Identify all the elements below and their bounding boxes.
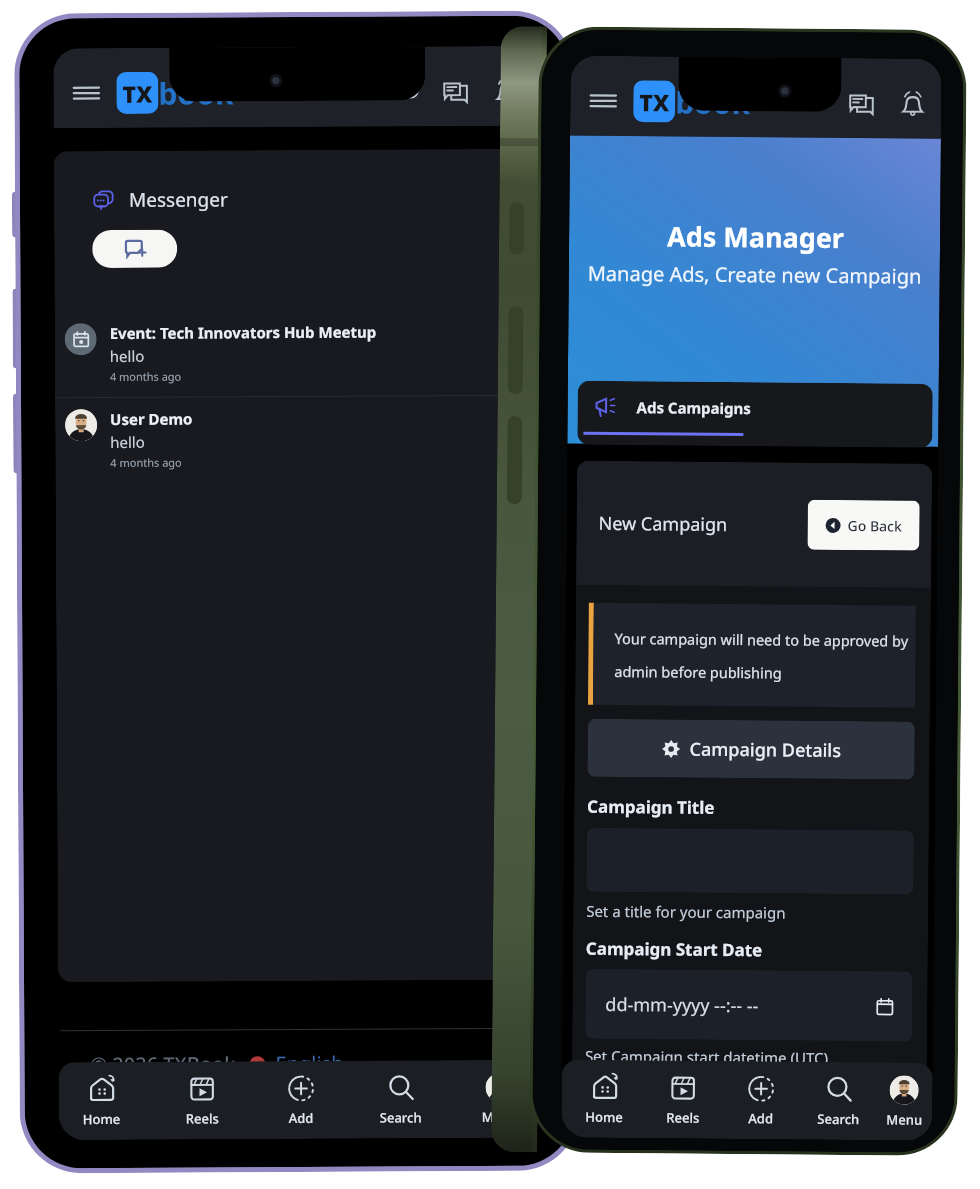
button[interactable]: New message (92, 230, 177, 268)
staticText: book (158, 72, 234, 114)
staticText: Go Back (847, 516, 903, 535)
button[interactable]: Go Back (807, 500, 920, 551)
button[interactable]: Campaign Details (587, 719, 915, 780)
button[interactable]: Menu (588, 86, 618, 116)
button[interactable]: Add (721, 1070, 800, 1132)
button[interactable]: Add friend (795, 88, 825, 118)
staticText: Reels (186, 1109, 219, 1128)
staticText: hello (110, 346, 145, 366)
staticText: Search (380, 1108, 422, 1127)
staticText: TX (639, 86, 670, 117)
button[interactable]: Event: Tech Innovators Hub Meetup (54, 310, 537, 397)
button[interactable] (586, 828, 914, 895)
staticText: Event: Tech Innovators Hub Meetup (110, 322, 377, 343)
button[interactable]: Add friend (389, 76, 419, 107)
button[interactable]: Reels (162, 1070, 241, 1132)
staticText: book (675, 81, 751, 123)
staticText: Ads Campaigns (636, 397, 752, 418)
button[interactable]: Search (361, 1069, 440, 1131)
button[interactable]: Notifications (898, 89, 927, 119)
staticText: User Demo (110, 408, 193, 429)
button[interactable]: Home (62, 1071, 141, 1132)
staticText: Campaign Details (689, 737, 842, 763)
button[interactable]: Menu (460, 1069, 539, 1130)
staticText: Add (748, 1109, 773, 1127)
staticText: Your campaign will need to be approved b… (614, 628, 909, 684)
button[interactable]: TX (116, 71, 234, 114)
button[interactable]: Search (799, 1071, 878, 1132)
staticText: Home (585, 1108, 623, 1126)
staticText: Campaign Start Date (586, 937, 763, 961)
staticText: TX (122, 78, 153, 109)
staticText: New Campaign (598, 511, 728, 537)
button[interactable]: Menu (71, 78, 101, 108)
staticText: Ads Manager (667, 217, 844, 256)
staticText: Manage Ads, Create new Campaign (588, 260, 922, 290)
staticText: Campaign Title (587, 795, 715, 819)
staticText: Home (83, 1110, 121, 1128)
staticText: Set Campaign start datetime (UTC) (585, 1046, 829, 1068)
staticText: Set a title for your campaign (586, 901, 786, 922)
button[interactable]: dd-mm-yyyy --:-- -- (585, 969, 913, 1042)
button[interactable]: Ads Campaigns (577, 381, 933, 435)
staticText: English (275, 1050, 344, 1077)
staticText: Reels (666, 1108, 699, 1127)
button[interactable]: Menu (877, 1071, 931, 1133)
button[interactable]: Add (261, 1070, 340, 1131)
staticText: dd-mm-yyyy --:-- -- (605, 992, 759, 1018)
button[interactable]: Messages (847, 89, 876, 118)
staticText: 4 months ago (110, 455, 182, 470)
staticText: Messenger (129, 186, 228, 213)
staticText: Menu (482, 1108, 518, 1126)
button[interactable]: User Demo (55, 396, 537, 483)
button[interactable]: Notifications (492, 77, 521, 106)
button[interactable]: Messages (441, 77, 470, 106)
staticText: 4 months ago (110, 369, 182, 384)
button[interactable]: Home (565, 1069, 644, 1130)
staticText: Menu (886, 1110, 922, 1129)
staticText: © 2026 TXBook (90, 1050, 235, 1078)
button[interactable]: Reels (643, 1069, 722, 1131)
staticText: Add (289, 1109, 314, 1127)
staticText: Search (817, 1110, 859, 1128)
button[interactable]: TX (633, 80, 751, 123)
staticText: hello (110, 432, 145, 452)
